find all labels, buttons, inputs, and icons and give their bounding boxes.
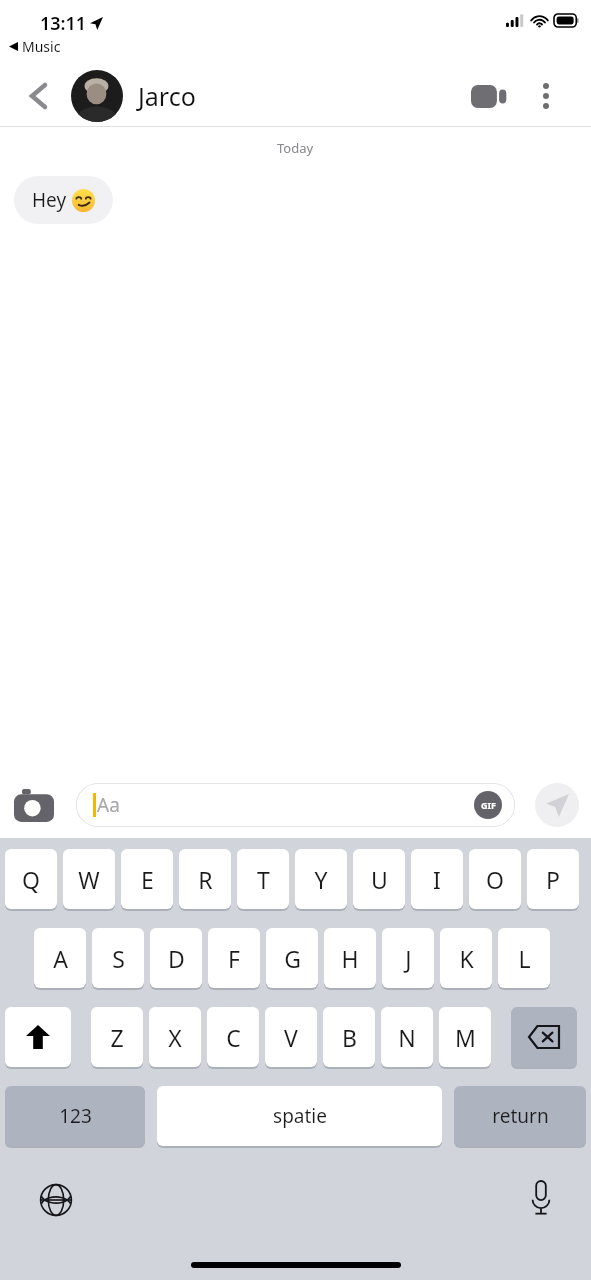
staticText: E	[141, 864, 154, 895]
button[interactable]: A	[34, 928, 86, 990]
staticText: Music	[22, 37, 61, 56]
staticText: GIF	[481, 799, 496, 811]
staticText: G	[284, 943, 301, 974]
button[interactable]: Send	[535, 783, 579, 827]
staticText: 13:11	[40, 11, 87, 36]
button[interactable]: W	[63, 849, 115, 911]
staticText: return	[492, 1103, 549, 1129]
button[interactable]: C	[207, 1007, 259, 1069]
button[interactable]: T	[237, 849, 289, 911]
button[interactable]: Aa	[76, 783, 515, 827]
button[interactable]: GIF	[474, 791, 502, 819]
button[interactable]: S	[92, 928, 144, 990]
staticText: F	[228, 943, 240, 974]
button[interactable]: D	[150, 928, 202, 990]
button[interactable]: E	[121, 849, 173, 911]
button[interactable]: Jarco	[71, 70, 196, 122]
staticText: X	[168, 1022, 182, 1053]
button[interactable]: Camera	[10, 781, 58, 829]
staticText: Z	[110, 1022, 124, 1053]
button[interactable]: R	[179, 849, 231, 911]
button[interactable]: B	[323, 1007, 375, 1069]
button[interactable]	[511, 1007, 577, 1069]
button[interactable]: M	[439, 1007, 491, 1069]
staticText: U	[371, 864, 388, 895]
staticText: M	[455, 1022, 476, 1053]
staticText: Today	[277, 139, 314, 157]
button[interactable]: N	[381, 1007, 433, 1069]
button[interactable]: K	[440, 928, 492, 990]
staticText: K	[459, 943, 474, 974]
button[interactable]: O	[469, 849, 521, 911]
staticText: P	[546, 864, 560, 895]
button[interactable]: 123	[5, 1086, 145, 1148]
staticText: N	[398, 1022, 416, 1053]
button[interactable]: Change keyboard language	[34, 1178, 78, 1222]
staticText: 123	[59, 1103, 92, 1129]
button[interactable]: Y	[295, 849, 347, 911]
staticText: O	[486, 864, 504, 895]
staticText: Jarco	[138, 79, 196, 113]
button[interactable]: More options	[524, 74, 568, 118]
staticText: H	[341, 943, 359, 974]
button[interactable]: Video call	[467, 74, 511, 118]
button[interactable]: P	[527, 849, 579, 911]
staticText: V	[284, 1022, 298, 1053]
staticText: T	[257, 864, 270, 895]
staticText: W	[78, 864, 100, 895]
staticText: C	[226, 1022, 241, 1053]
staticText: I	[433, 864, 441, 895]
button[interactable]: I	[411, 849, 463, 911]
button[interactable]: Z	[91, 1007, 143, 1069]
button[interactable]: H	[324, 928, 376, 990]
staticText: A	[53, 943, 68, 974]
button[interactable]: spatie	[157, 1086, 442, 1148]
button[interactable]: V	[265, 1007, 317, 1069]
staticText: Q	[22, 864, 40, 895]
button[interactable]: J	[382, 928, 434, 990]
staticText: S	[112, 943, 125, 974]
staticText: J	[405, 943, 412, 974]
button[interactable]: Dictation	[519, 1176, 563, 1220]
button[interactable]: L	[498, 928, 550, 990]
staticText: Aa	[97, 792, 120, 818]
button[interactable]: Hey	[14, 176, 113, 224]
button[interactable]: X	[149, 1007, 201, 1069]
staticText: spatie	[273, 1103, 327, 1129]
button[interactable]: U	[353, 849, 405, 911]
button[interactable]: Q	[5, 849, 57, 911]
button[interactable]	[5, 1007, 71, 1069]
staticText: B	[342, 1022, 357, 1053]
button[interactable]: G	[266, 928, 318, 990]
button[interactable]: F	[208, 928, 260, 990]
button[interactable]: Back	[18, 76, 58, 116]
staticText: L	[518, 943, 531, 974]
staticText: D	[168, 943, 185, 974]
staticText: Y	[314, 864, 328, 895]
button[interactable]: return	[454, 1086, 586, 1148]
staticText: Hey	[32, 187, 72, 213]
staticText: R	[198, 864, 213, 895]
